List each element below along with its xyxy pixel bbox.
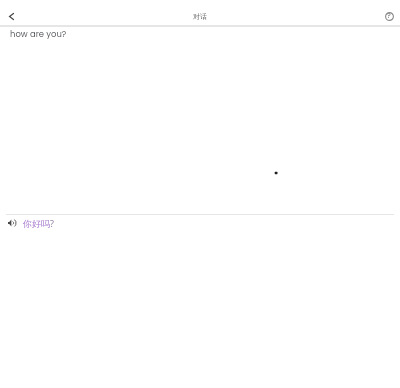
button[interactable]: how are you? [0,26,400,206]
button[interactable]: Back [0,4,23,28]
staticText: 你好吗 [23,218,50,229]
button[interactable]: Play translation audio [0,215,400,231]
button[interactable]: Play translation audio [6,217,18,229]
staticText: ? [50,217,54,229]
button[interactable]: Help [378,5,400,27]
staticText: ? [387,11,391,21]
staticText: 对话 [193,12,207,21]
staticText: how are you? [10,28,67,40]
